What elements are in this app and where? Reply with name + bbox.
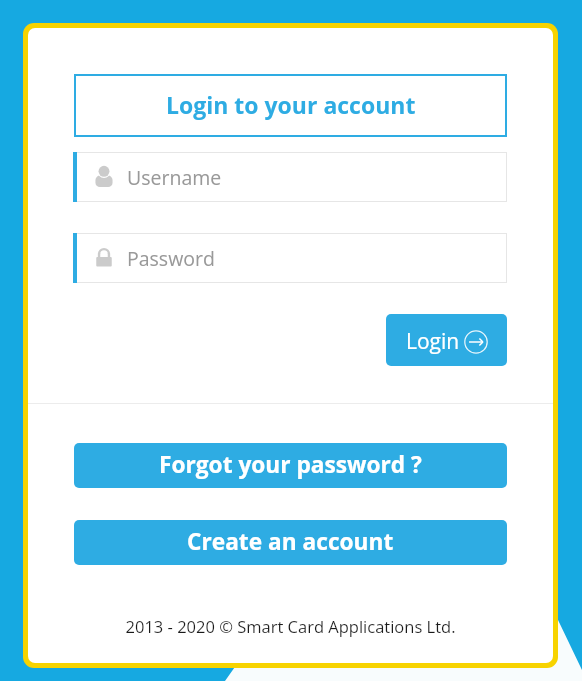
button[interactable]: Username [74,152,507,202]
staticText: 2013 - 2020 © Smart Card Applications Lt… [28,615,553,637]
staticText: Username [127,164,222,191]
staticText: Password [127,245,215,272]
button[interactable]: Forgot your password ? [74,443,507,488]
button[interactable]: Login to your account [74,74,507,137]
staticText: Forgot your password ? [159,449,422,480]
staticText: Login [406,327,460,356]
staticText: Login to your account [166,89,416,120]
button[interactable]: Login [386,314,507,366]
button[interactable]: Create an account [74,520,507,565]
staticText: Create an account [187,526,394,557]
button[interactable]: Password [74,233,507,283]
